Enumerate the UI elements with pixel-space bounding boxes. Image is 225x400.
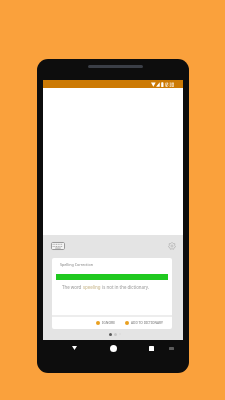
staticText: The word bbox=[62, 284, 83, 290]
button[interactable]: Recent apps bbox=[143, 340, 159, 356]
button[interactable]: Home bbox=[105, 340, 121, 356]
button[interactable]: ADD TO DICTIONARY bbox=[124, 319, 164, 327]
button[interactable]: Keyboard bbox=[50, 241, 66, 251]
staticText: speeling bbox=[83, 284, 101, 290]
staticText: IGNORE bbox=[102, 320, 116, 325]
button[interactable]: Switch keyboard bbox=[163, 340, 179, 356]
staticText: Spelling Correction bbox=[60, 262, 93, 267]
button[interactable]: Back bbox=[66, 340, 82, 356]
button[interactable]: IGNORE bbox=[95, 318, 117, 327]
staticText: ADD TO DICTIONARY bbox=[131, 321, 163, 325]
button[interactable]: Settings bbox=[166, 240, 178, 252]
staticText: is not in the dictionary. bbox=[101, 284, 150, 290]
